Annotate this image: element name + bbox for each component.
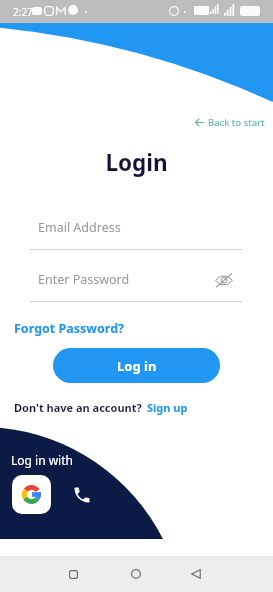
button[interactable]: Log in bbox=[53, 348, 220, 383]
staticText: Back to start bbox=[208, 116, 265, 129]
button[interactable]: Home bbox=[120, 556, 152, 592]
staticText: Enter Password bbox=[38, 271, 130, 288]
button[interactable]: Forgot Password? bbox=[11, 317, 128, 340]
button[interactable]: Log in with phone bbox=[67, 480, 97, 510]
staticText: 2:27 bbox=[13, 5, 33, 19]
staticText: Log in with bbox=[11, 452, 73, 468]
button[interactable]: Recents bbox=[57, 556, 89, 592]
staticText: Don't have an account? bbox=[14, 400, 142, 415]
button[interactable]: Back to start bbox=[192, 113, 268, 132]
button[interactable]: Sign up bbox=[147, 400, 188, 415]
staticText: Forgot Password? bbox=[14, 320, 125, 337]
staticText: Log in bbox=[117, 357, 157, 375]
button[interactable]: Toggle password visibility bbox=[213, 269, 235, 291]
button[interactable]: Log in with Google bbox=[12, 475, 51, 514]
staticText: Login bbox=[0, 147, 273, 178]
button[interactable]: Back bbox=[180, 556, 212, 592]
staticText: Sign up bbox=[147, 400, 188, 415]
staticText: Email Address bbox=[38, 219, 121, 236]
